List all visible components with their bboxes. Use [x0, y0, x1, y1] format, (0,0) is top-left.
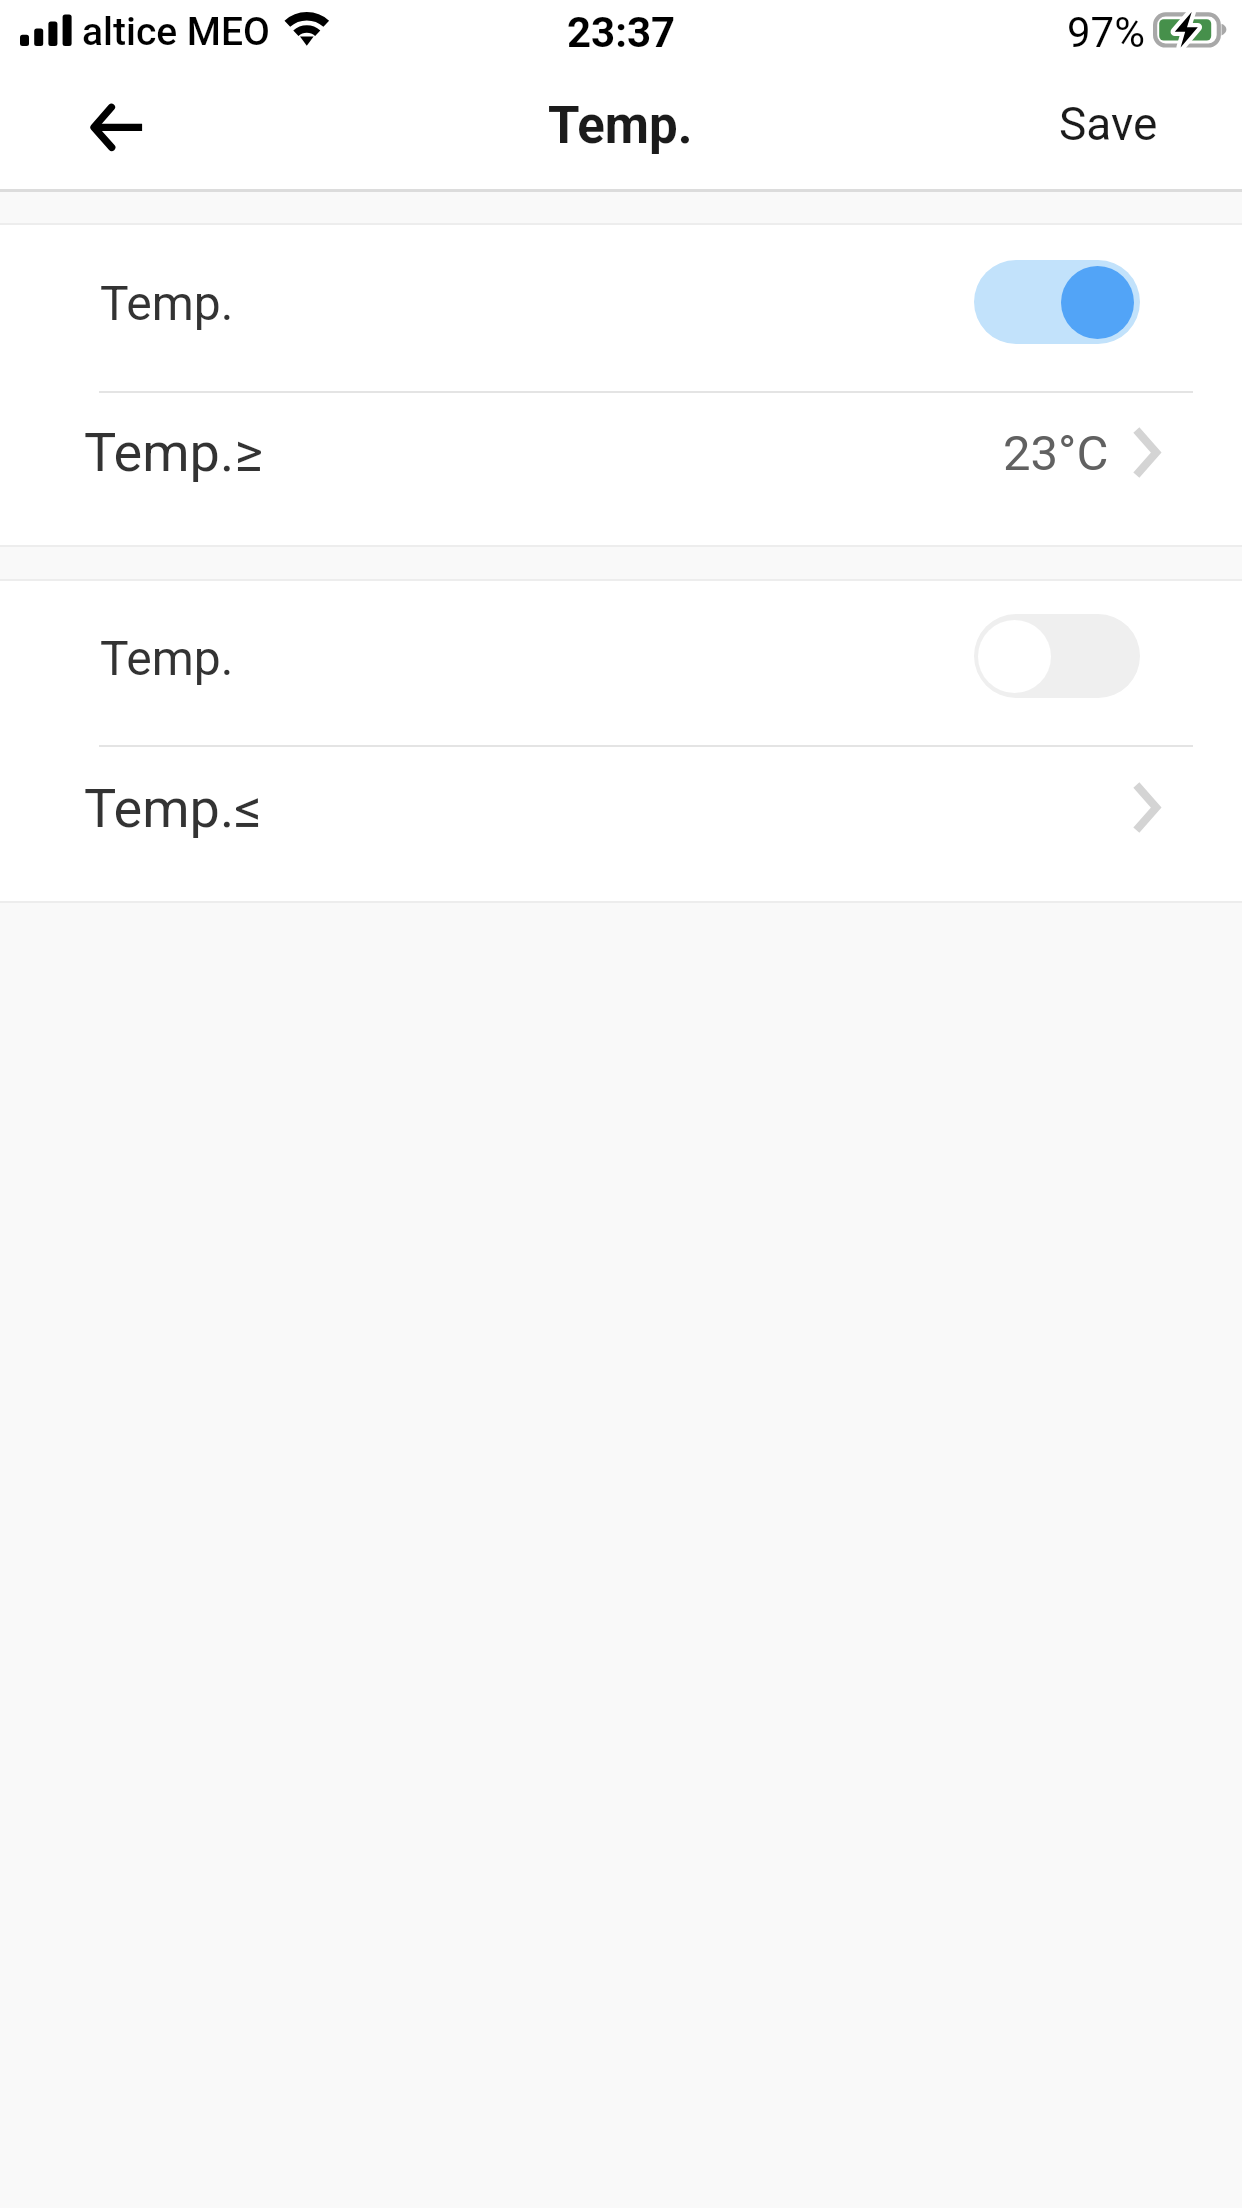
button[interactable]: Temp.	[0, 581, 1242, 745]
button[interactable]: Save	[1035, 74, 1183, 174]
staticText: Temp.≤	[84, 777, 262, 840]
staticText: Temp.≥	[84, 421, 263, 484]
staticText: altice MEO	[82, 9, 270, 55]
button[interactable]: Turn on	[974, 614, 1140, 698]
staticText: 23°C	[1003, 425, 1109, 482]
button[interactable]: Back	[46, 72, 186, 182]
button[interactable]: Temp.≥	[0, 391, 1242, 545]
staticText: Save	[1059, 97, 1158, 151]
button[interactable]: Turn off	[974, 260, 1140, 344]
staticText: 23:37	[567, 8, 676, 57]
button[interactable]: Temp.≤	[0, 745, 1242, 901]
staticText: Temp.	[548, 96, 693, 156]
staticText: 97%	[1067, 8, 1145, 57]
staticText: Temp.	[100, 275, 234, 331]
button[interactable]: Temp.	[0, 225, 1242, 391]
staticText: Temp.	[100, 630, 234, 686]
